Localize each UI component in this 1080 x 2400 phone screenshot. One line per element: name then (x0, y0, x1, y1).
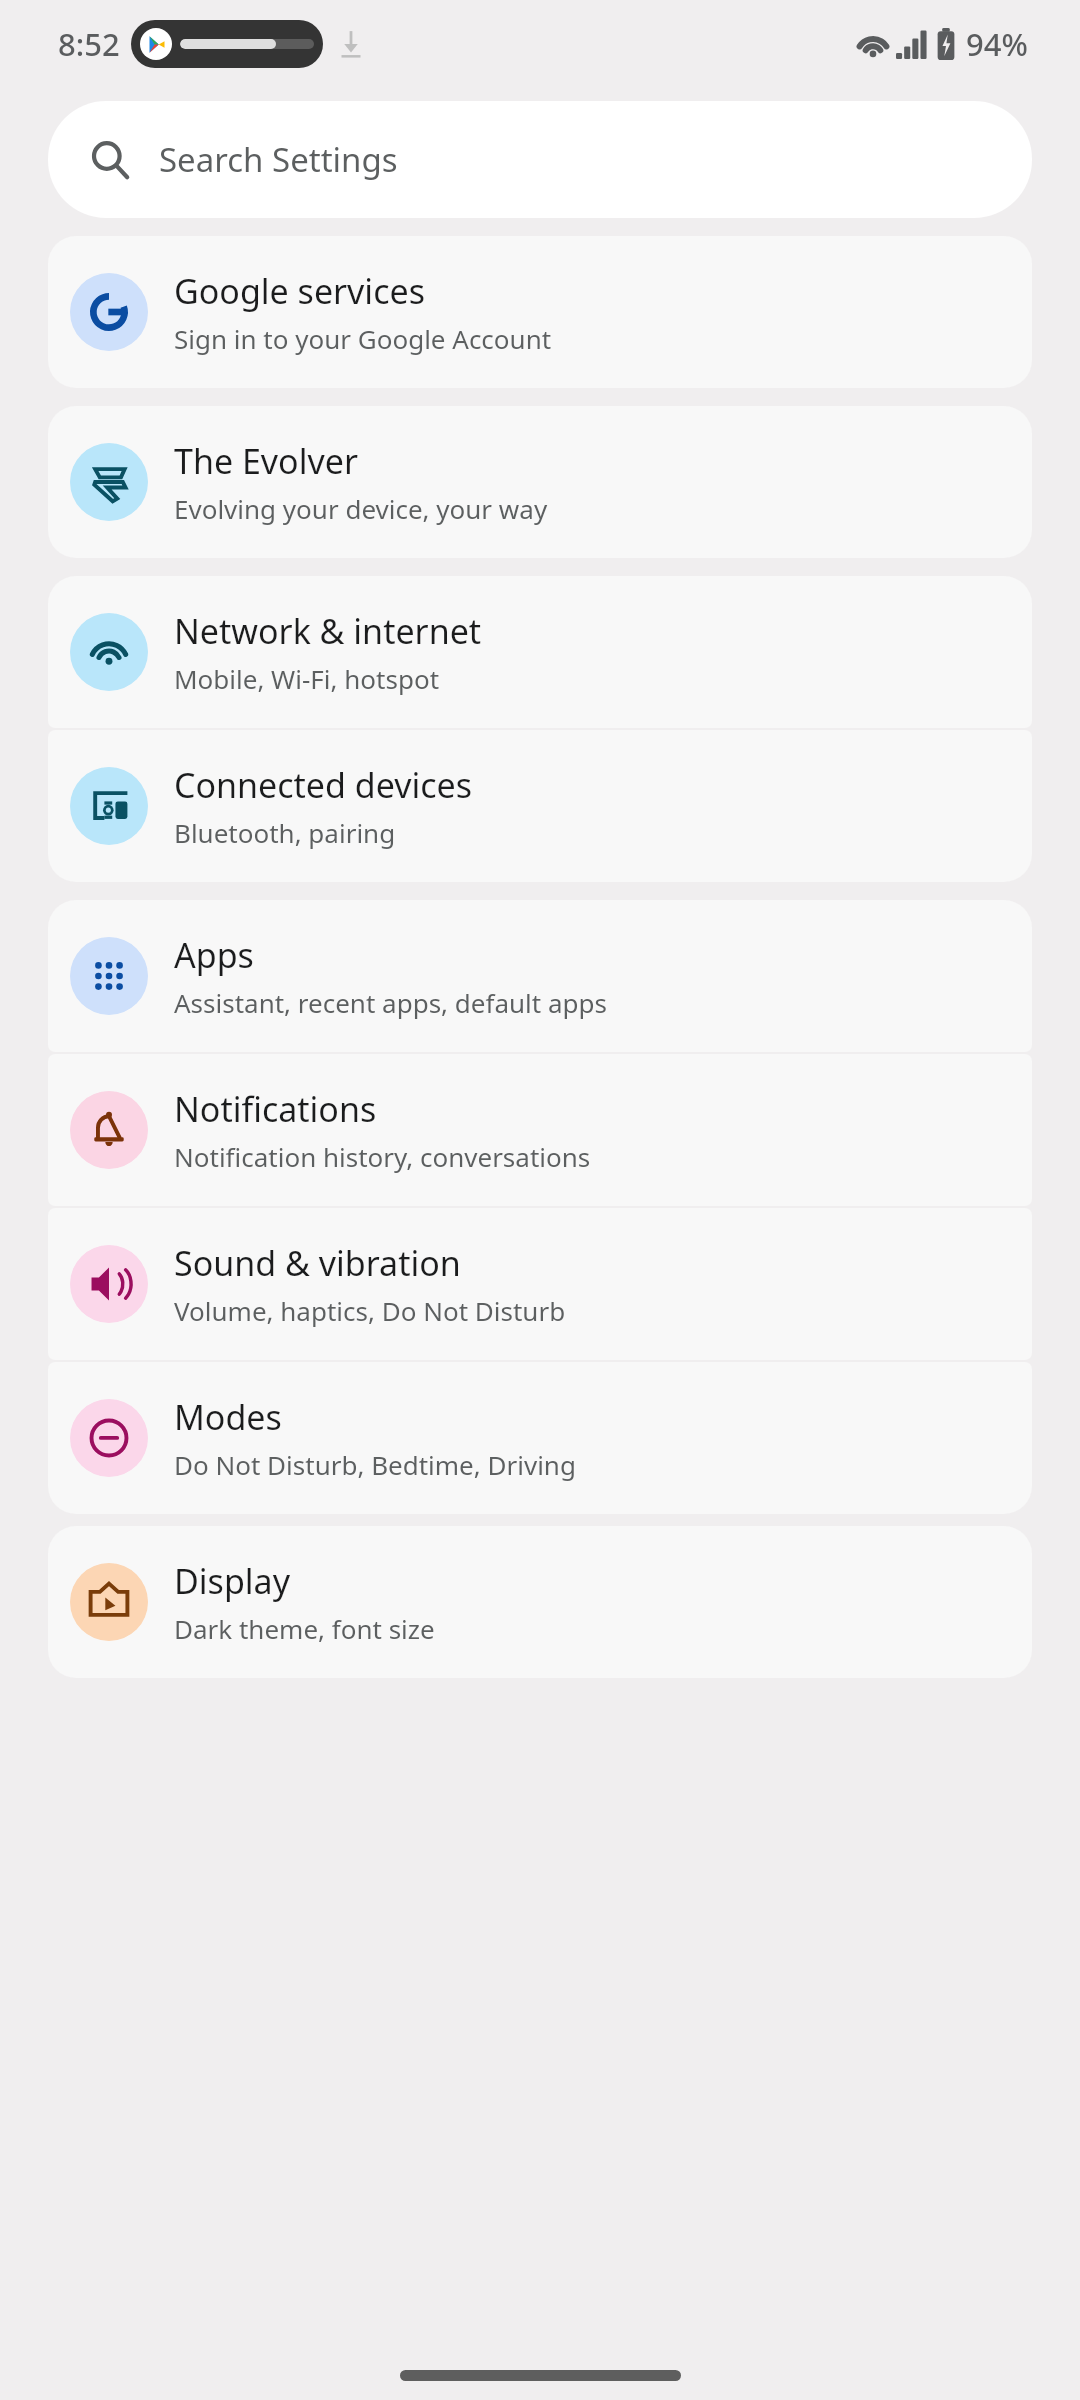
staticText: Google services (174, 268, 425, 314)
button[interactable]: Network & internet (48, 576, 1032, 728)
staticText: Search Settings (159, 137, 398, 182)
staticText: Dark theme, font size (174, 1611, 435, 1646)
button[interactable]: Sound & vibration (48, 1208, 1032, 1360)
button[interactable]: Search Settings (48, 101, 1032, 218)
button[interactable]: Modes (48, 1362, 1032, 1514)
button[interactable]: Connected devices (48, 730, 1032, 882)
staticText: Mobile, Wi-Fi, hotspot (174, 661, 440, 696)
other: Downloading (337, 30, 365, 58)
button[interactable]: Google services (48, 236, 1032, 388)
staticText: Bluetooth, pairing (174, 815, 396, 850)
button[interactable]: Apps (48, 900, 1032, 1052)
staticText: Modes (174, 1394, 282, 1440)
staticText: The Evolver (174, 438, 358, 484)
staticText: Assistant, recent apps, default apps (174, 985, 607, 1020)
staticText: Sign in to your Google Account (174, 321, 552, 356)
staticText: 8:52 (58, 23, 120, 65)
staticText: Notifications (174, 1086, 377, 1132)
staticText: Apps (174, 932, 254, 978)
staticText: Display (174, 1558, 290, 1604)
staticText: Evolving your device, your way (174, 491, 548, 526)
button[interactable]: Notifications (48, 1054, 1032, 1206)
staticText: Do Not Disturb, Bedtime, Driving (174, 1447, 576, 1482)
staticText: Volume, haptics, Do Not Disturb (174, 1293, 566, 1328)
staticText: Notification history, conversations (174, 1139, 591, 1174)
staticText: Sound & vibration (174, 1240, 461, 1286)
button[interactable]: The Evolver (48, 406, 1032, 558)
staticText: Connected devices (174, 762, 473, 808)
button[interactable]: Display (48, 1526, 1032, 1678)
button[interactable]: Play Store download progress (131, 20, 323, 68)
staticText: 94% (966, 23, 1028, 65)
staticText: Network & internet (174, 608, 482, 654)
